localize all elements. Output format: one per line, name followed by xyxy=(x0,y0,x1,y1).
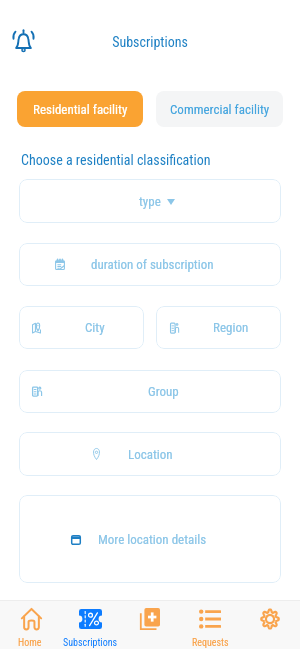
staticText: type xyxy=(139,194,161,209)
button[interactable]: Requests xyxy=(180,600,240,649)
staticText: Region xyxy=(213,320,249,335)
button[interactable]: Commercial facility xyxy=(156,91,283,127)
button[interactable]: Notifications xyxy=(8,22,38,58)
button[interactable]: Location xyxy=(19,432,281,476)
button[interactable]: City xyxy=(19,306,144,349)
button[interactable]: Residential facility xyxy=(17,91,143,127)
button[interactable]: type xyxy=(19,179,281,223)
button[interactable]: Add request xyxy=(120,600,180,649)
button[interactable]: Region xyxy=(156,306,281,349)
staticText: City xyxy=(85,320,105,335)
staticText: Subscriptions xyxy=(63,637,118,649)
staticText: Group xyxy=(148,384,179,399)
staticText: Subscriptions xyxy=(0,34,300,50)
staticText: duration of subscription xyxy=(91,257,214,272)
staticText: Residential facility xyxy=(33,102,128,117)
button[interactable]: Home xyxy=(0,600,60,649)
staticText: Choose a residential classification xyxy=(21,152,211,168)
staticText: Requests xyxy=(192,637,229,649)
button[interactable]: Settings xyxy=(240,600,300,649)
staticText: Home xyxy=(18,637,42,649)
staticText: Commercial facility xyxy=(170,102,270,117)
button[interactable]: duration of subscription xyxy=(19,243,281,286)
staticText: More location details xyxy=(98,532,207,547)
button[interactable]: Group xyxy=(19,370,281,413)
button[interactable]: Subscriptions xyxy=(60,600,120,649)
button[interactable]: More location details xyxy=(19,495,281,583)
staticText: Location xyxy=(128,447,173,462)
